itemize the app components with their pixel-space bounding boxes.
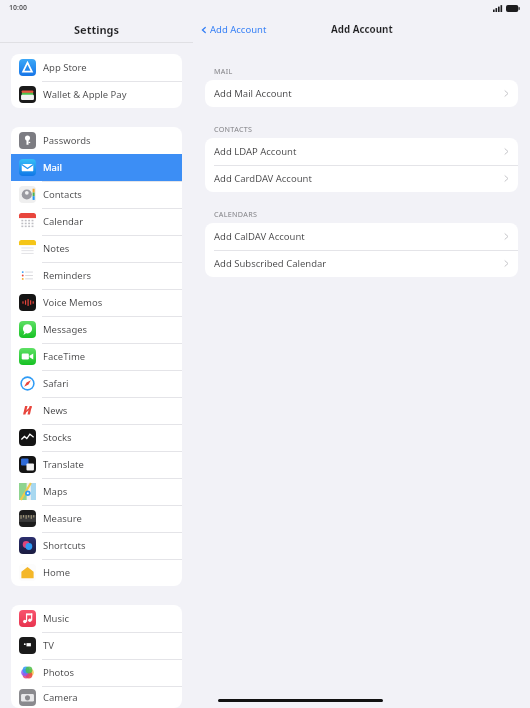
button[interactable]: Calendar <box>11 208 182 235</box>
staticText: Music <box>43 612 70 625</box>
button[interactable]: App Store <box>11 54 182 81</box>
button[interactable]: Voice Memos <box>11 289 182 316</box>
staticText: Passwords <box>43 134 91 147</box>
button[interactable]: Add Subscribed Calendar <box>205 250 518 277</box>
button[interactable]: Add CardDAV Account <box>205 165 518 192</box>
button[interactable]: Back <box>200 23 267 36</box>
staticText: 10:00 <box>9 3 27 13</box>
staticText: Settings <box>74 22 120 37</box>
button[interactable]: Add CalDAV Account <box>205 223 518 250</box>
staticText: Reminders <box>43 269 92 282</box>
button[interactable]: Home <box>11 559 182 586</box>
staticText: Calendar <box>43 215 84 228</box>
staticText: Notes <box>43 242 70 255</box>
staticText: Measure <box>43 512 82 525</box>
button[interactable]: TV <box>11 632 182 659</box>
staticText: CONTACTS <box>214 124 253 134</box>
staticText: Safari <box>43 377 69 390</box>
staticText: Add LDAP Account <box>214 145 503 158</box>
button[interactable]: Safari <box>11 370 182 397</box>
staticText: Contacts <box>43 188 82 201</box>
button[interactable]: Add Mail Account <box>205 80 518 107</box>
button[interactable]: Notes <box>11 235 182 262</box>
button[interactable]: Stocks <box>11 424 182 451</box>
staticText: CALENDARS <box>214 209 258 219</box>
button[interactable]: Photos <box>11 659 182 686</box>
staticText: News <box>43 404 68 417</box>
button[interactable]: Camera <box>11 686 182 708</box>
staticText: Stocks <box>43 431 72 444</box>
button[interactable]: Maps <box>11 478 182 505</box>
button[interactable]: Messages <box>11 316 182 343</box>
button[interactable]: Reminders <box>11 262 182 289</box>
staticText: Translate <box>43 458 84 471</box>
button[interactable]: Translate <box>11 451 182 478</box>
staticText: Shortcuts <box>43 539 86 552</box>
staticText: Home <box>43 566 71 579</box>
other: Back <box>200 26 208 34</box>
staticText: TV <box>43 639 54 652</box>
staticText: Voice Memos <box>43 296 103 309</box>
button[interactable]: Shortcuts <box>11 532 182 559</box>
button[interactable]: Contacts <box>11 181 182 208</box>
button[interactable]: Add LDAP Account <box>205 138 518 165</box>
staticText: Add CardDAV Account <box>214 172 503 185</box>
staticText: App Store <box>43 61 87 74</box>
button[interactable]: Measure <box>11 505 182 532</box>
staticText: Add Mail Account <box>214 87 503 100</box>
staticText: Add Account <box>331 23 393 36</box>
button[interactable]: Wallet & Apple Pay <box>11 81 182 108</box>
staticText: Camera <box>43 691 78 704</box>
staticText: Messages <box>43 323 88 336</box>
staticText: MAIL <box>214 66 233 76</box>
button[interactable]: Music <box>11 605 182 632</box>
staticText: Add CalDAV Account <box>214 230 503 243</box>
staticText: Wallet & Apple Pay <box>43 88 127 101</box>
staticText: Add Account <box>210 23 267 36</box>
staticText: FaceTime <box>43 350 86 363</box>
staticText: Add Subscribed Calendar <box>214 257 503 270</box>
staticText: Photos <box>43 666 75 679</box>
button[interactable]: Passwords <box>11 127 182 154</box>
staticText: Mail <box>43 161 62 174</box>
button[interactable]: FaceTime <box>11 343 182 370</box>
button[interactable]: News <box>11 397 182 424</box>
staticText: Maps <box>43 485 68 498</box>
button[interactable]: Mail <box>11 154 182 181</box>
